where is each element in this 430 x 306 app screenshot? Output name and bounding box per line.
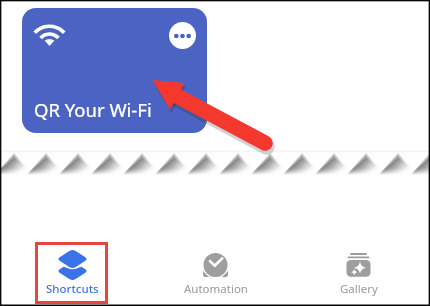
button[interactable]: Automation <box>144 236 287 306</box>
staticText: Automation <box>184 281 248 297</box>
button[interactable]: More options <box>169 22 196 49</box>
staticText: Shortcuts <box>46 281 99 297</box>
button[interactable]: More options <box>22 8 207 133</box>
staticText: QR Your Wi-Fi <box>34 97 152 122</box>
button[interactable]: Shortcuts <box>0 236 144 306</box>
staticText: Gallery <box>340 281 378 297</box>
button[interactable]: Gallery <box>287 236 430 306</box>
